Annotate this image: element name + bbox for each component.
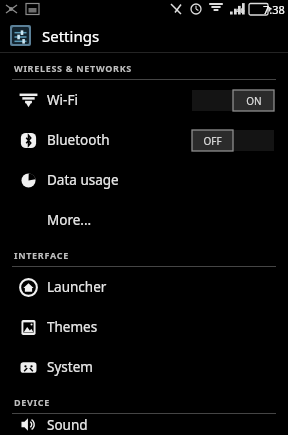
staticText: WIRELESS & NETWORKS (14, 62, 132, 74)
staticText: INTERFACE (14, 249, 69, 261)
staticText: More... (47, 211, 92, 229)
staticText: Data usage (47, 171, 119, 189)
button[interactable]: Launcher (0, 267, 288, 307)
staticText: Themes (47, 318, 98, 336)
staticText: Launcher (47, 278, 107, 296)
staticText: 7:38 (263, 2, 285, 17)
button[interactable]: More... (0, 200, 288, 240)
staticText: Sound (47, 416, 88, 434)
button[interactable]: Data usage (0, 160, 288, 200)
button[interactable]: Settings app icon (0, 19, 288, 52)
button[interactable]: Switch off (192, 130, 274, 151)
button[interactable]: Themes (0, 307, 288, 347)
staticText: DEVICE (14, 396, 50, 408)
staticText: Wi-Fi (47, 91, 78, 109)
staticText: System (47, 358, 93, 376)
other: Settings app icon (10, 25, 31, 46)
button[interactable]: Sound (0, 414, 288, 435)
staticText: ON (246, 94, 262, 108)
staticText: Settings (42, 26, 100, 46)
button[interactable]: Bluetooth (0, 120, 288, 160)
staticText: OFF (203, 134, 222, 148)
button[interactable]: Wi-Fi (0, 80, 288, 120)
staticText: 46 (236, 5, 245, 15)
button[interactable]: System (0, 347, 288, 387)
button[interactable]: Switch on (192, 90, 274, 111)
staticText: Bluetooth (47, 131, 110, 149)
